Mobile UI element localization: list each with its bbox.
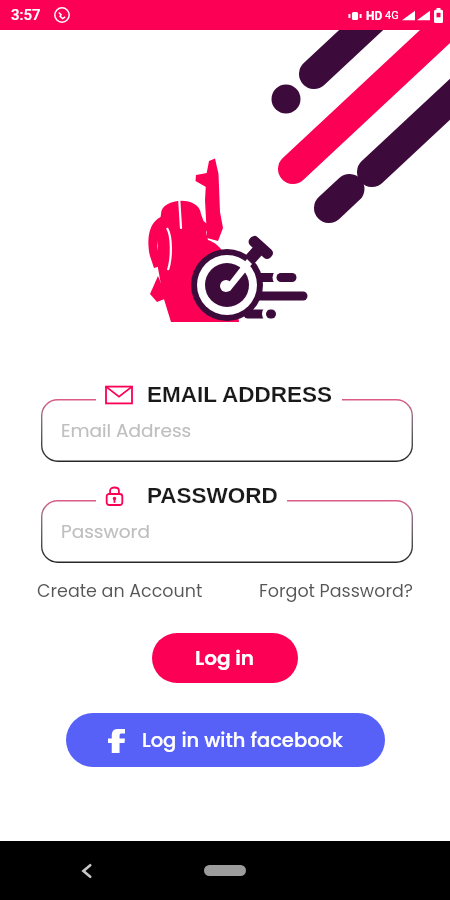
staticText: Log in bbox=[195, 644, 255, 672]
staticText: Email Address bbox=[61, 418, 192, 444]
staticText: 3:57 bbox=[11, 6, 41, 24]
staticText: PASSWORD bbox=[147, 483, 278, 508]
staticText: 4G bbox=[385, 9, 399, 22]
button[interactable]: Log in with facebook bbox=[66, 713, 385, 767]
button[interactable]: Log in bbox=[152, 633, 298, 683]
button[interactable]: Email Address bbox=[41, 399, 413, 462]
button[interactable]: Forgot Password? bbox=[259, 579, 413, 604]
button[interactable]: Back bbox=[78, 862, 96, 880]
button[interactable]: Create an Account bbox=[37, 579, 203, 604]
staticText: HD bbox=[366, 9, 383, 23]
staticText: Log in with facebook bbox=[142, 727, 343, 754]
staticText: Password bbox=[61, 519, 150, 545]
button[interactable]: Password bbox=[41, 500, 413, 563]
button[interactable]: Home bbox=[204, 865, 246, 876]
staticText: EMAIL ADDRESS bbox=[147, 382, 333, 407]
